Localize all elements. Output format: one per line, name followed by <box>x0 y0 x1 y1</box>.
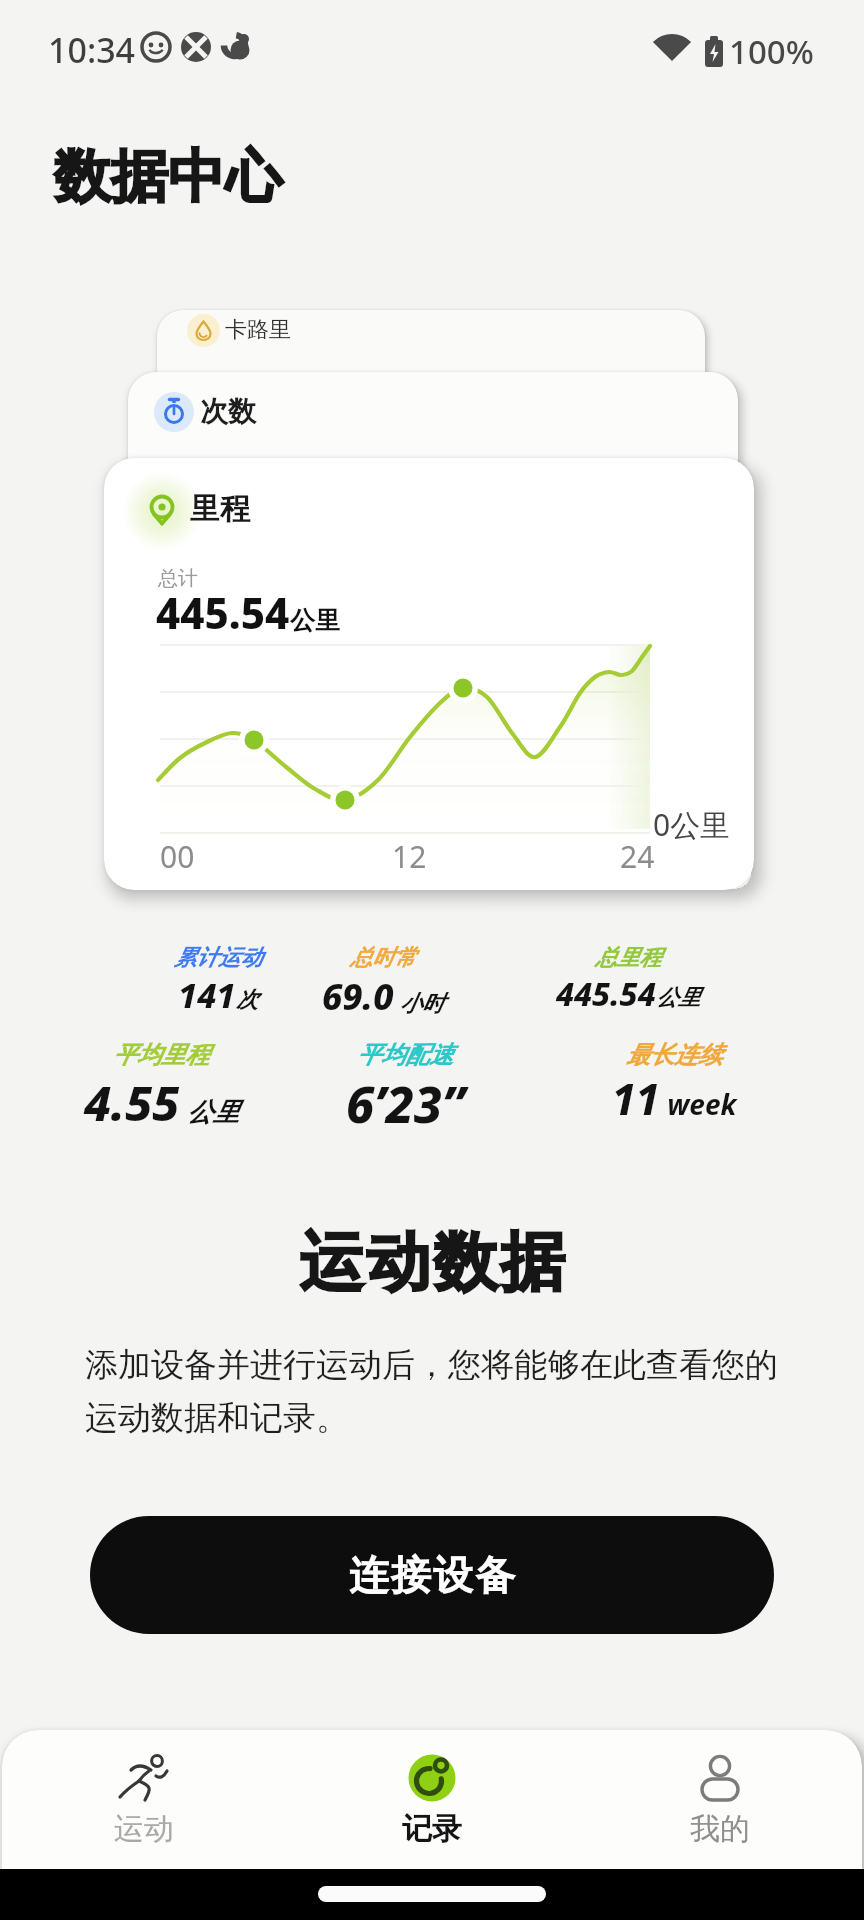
button[interactable]: 卡路里 <box>157 310 705 450</box>
staticText: 平均里程 <box>113 1040 209 1070</box>
staticText: 11 <box>612 1070 660 1127</box>
staticText: 445.54 <box>156 584 290 641</box>
staticText: 总计 <box>158 566 198 591</box>
staticText: 运动数据 <box>298 1222 566 1303</box>
staticText: 数据中心 <box>54 141 282 213</box>
staticText: 445.54 <box>556 972 656 1016</box>
staticText: 4.55 <box>84 1070 180 1135</box>
staticText: 卡路里 <box>225 316 291 344</box>
staticText: 24 <box>620 836 655 877</box>
staticText: 69.0 <box>322 972 394 1021</box>
staticText: 100% <box>729 29 814 74</box>
button[interactable]: 运动 <box>74 1740 214 1860</box>
staticText: 总时常 <box>350 944 416 972</box>
staticText: 小时 <box>394 987 444 1017</box>
button[interactable]: 连接设备 <box>90 1516 774 1634</box>
staticText: 运动 <box>114 1810 174 1848</box>
staticText: 次 <box>236 986 258 1014</box>
button[interactable]: 次数 <box>128 372 738 532</box>
staticText: 10:34 <box>48 27 136 73</box>
staticText: 总里程 <box>595 944 661 972</box>
staticText: 0公里 <box>653 804 731 845</box>
staticText: 最长连续 <box>626 1040 722 1070</box>
staticText: 平均配速 <box>357 1040 453 1070</box>
staticText: 我的 <box>690 1810 750 1848</box>
staticText: 141 <box>178 972 236 1018</box>
staticText: 添加设备并进行运动后，您将能够在此查看您的运动数据和记录。 <box>85 1344 785 1438</box>
staticText: 公里 <box>656 984 700 1012</box>
staticText: 记录 <box>402 1810 462 1848</box>
staticText: 累计运动 <box>174 944 262 972</box>
staticText: 公里 <box>290 605 340 636</box>
staticText: 12 <box>392 836 427 877</box>
button[interactable]: 里程 <box>104 458 754 890</box>
button[interactable]: 记录 <box>362 1740 502 1860</box>
staticText: 6’23’’ <box>346 1070 465 1138</box>
staticText: 连接设备 <box>348 1550 516 1600</box>
staticText: 里程 <box>190 490 250 528</box>
staticText: 00 <box>160 836 195 877</box>
staticText: 次数 <box>200 394 256 429</box>
staticText: week <box>660 1085 737 1123</box>
staticText: 公里 <box>180 1093 239 1129</box>
button[interactable]: 我的 <box>650 1740 790 1860</box>
